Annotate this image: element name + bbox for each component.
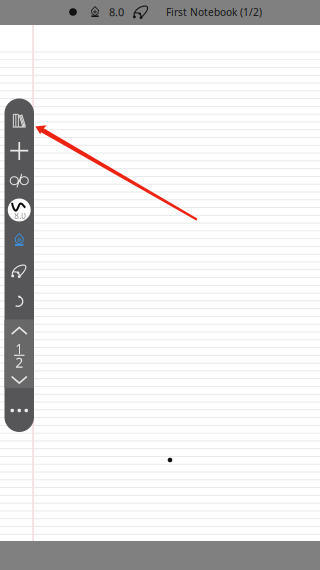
staticText: 8.0 [14,211,26,221]
button[interactable]: Ink colour [62,1,84,23]
button[interactable]: Read only mode [4,167,34,193]
button[interactable]: More options [4,401,34,419]
button[interactable]: New page [4,138,34,164]
button[interactable]: Next page [4,370,34,390]
button[interactable]: Lasso [130,1,152,23]
button[interactable]: Pen [84,1,106,23]
staticText: 1 [15,339,23,358]
button[interactable]: Previous page [4,321,34,341]
button[interactable]: Notebooks [4,108,34,134]
staticText: 8.0 [109,5,124,19]
button[interactable]: Fountain pen [4,227,34,253]
button[interactable]: Pen tool [4,197,34,223]
button[interactable]: Undo [4,288,34,314]
button[interactable]: Lasso select [4,258,34,284]
staticText: First Notebook (1/2) [166,5,262,19]
staticText: 2 [15,353,23,372]
